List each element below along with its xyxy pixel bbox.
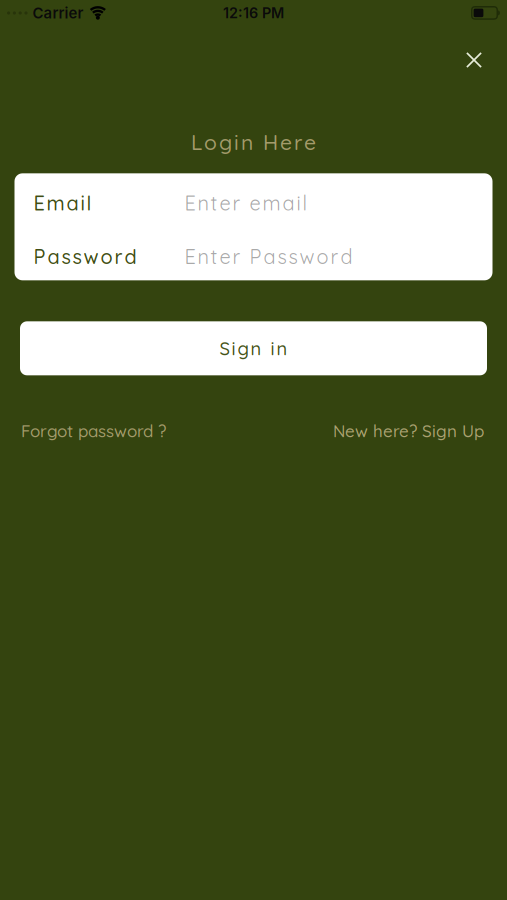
button[interactable]: Close [460, 46, 488, 74]
staticText: Forgot password ? [21, 420, 166, 441]
staticText: S i g n i n [219, 337, 287, 360]
staticText: P a s s w o r d [33, 244, 136, 269]
staticText: E n t e r P a s s w o r d [184, 244, 352, 269]
button[interactable]: S i g n i n [20, 321, 487, 375]
button[interactable]: Password, Enter Password [14, 230, 492, 283]
staticText: Carrier [33, 4, 84, 22]
staticText: E n t e r e m a i l [184, 191, 307, 215]
button[interactable]: New here? Sign Up [333, 420, 484, 441]
staticText: 12:16 PM [223, 4, 284, 22]
button[interactable]: Forgot password ? [21, 420, 166, 441]
staticText: L o g i n H e r e [191, 129, 316, 155]
staticText: New here? Sign Up [333, 420, 484, 441]
staticText: E m a i l [33, 191, 91, 215]
button[interactable]: Email, Enter email [14, 176, 492, 230]
